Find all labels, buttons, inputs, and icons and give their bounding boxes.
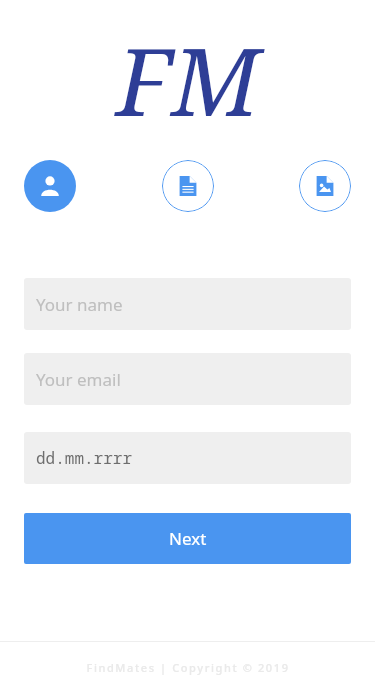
staticText: dd.mm.rrrr bbox=[36, 447, 133, 469]
button[interactable]: Next bbox=[24, 513, 351, 564]
button[interactable]: Photo step bbox=[299, 160, 351, 212]
button[interactable]: Personal details step bbox=[24, 160, 76, 212]
staticText: FM bbox=[116, 16, 260, 144]
button[interactable]: Your name bbox=[24, 278, 351, 330]
staticText: Your email bbox=[36, 368, 121, 391]
staticText: FindMates | Copyright © 2019 bbox=[86, 660, 290, 675]
staticText: Your name bbox=[36, 293, 123, 316]
staticText: Next bbox=[169, 527, 207, 550]
button[interactable]: Your email bbox=[24, 353, 351, 405]
button[interactable]: dd.mm.rrrr bbox=[24, 432, 351, 484]
button[interactable]: Documents step bbox=[162, 160, 214, 212]
